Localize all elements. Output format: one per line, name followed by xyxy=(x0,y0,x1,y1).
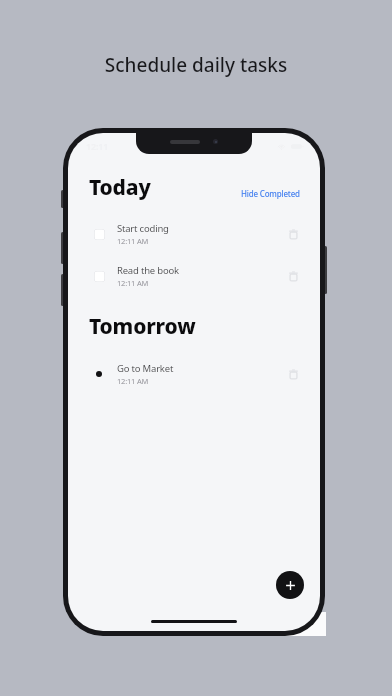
button[interactable]: Add task xyxy=(276,571,304,599)
button[interactable]: Start coding xyxy=(68,218,320,250)
staticText: Tomorrow xyxy=(89,312,196,341)
button[interactable]: Read the book xyxy=(68,260,320,292)
staticText: 12:11 AM xyxy=(117,278,149,288)
staticText: Today xyxy=(89,173,151,202)
staticText: Hide Completed xyxy=(241,188,300,199)
button[interactable]: Go to Market xyxy=(68,358,320,390)
staticText: Schedule daily tasks xyxy=(0,52,392,78)
button[interactable]: Delete Start coding xyxy=(282,223,304,245)
button[interactable]: Hide Completed xyxy=(239,185,302,202)
staticText: 12:11 AM xyxy=(117,236,149,246)
staticText: Start coding xyxy=(117,222,169,235)
button[interactable]: Delete Go to Market xyxy=(282,363,304,385)
staticText: 12:11 AM xyxy=(117,376,149,386)
staticText: Go to Market xyxy=(117,362,174,375)
staticText: Read the book xyxy=(117,264,179,277)
button[interactable]: Delete Read the book xyxy=(282,265,304,287)
